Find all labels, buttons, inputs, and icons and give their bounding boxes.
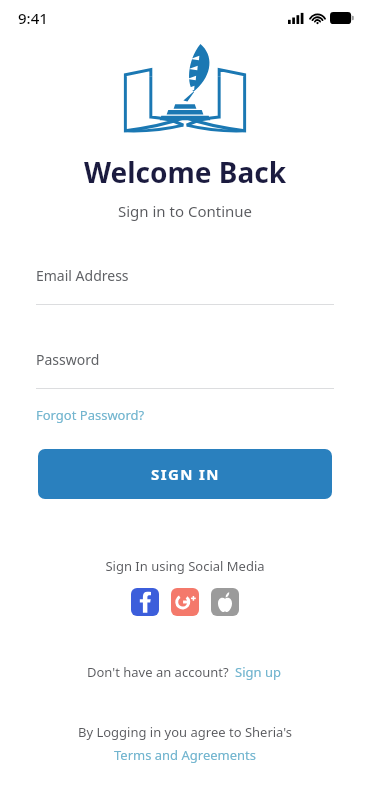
staticText: Password	[36, 350, 100, 369]
staticText: Don't have an account?	[87, 663, 233, 681]
staticText: Email Address	[36, 266, 129, 285]
staticText: 9:41	[18, 8, 48, 28]
button[interactable]: Forgot Password?	[30, 403, 151, 427]
button[interactable]: Sign in with Apple	[211, 588, 239, 616]
button[interactable]: Terms and Agreements	[110, 744, 260, 766]
staticText: By Logging in you agree to Sheria's	[0, 723, 370, 741]
staticText: SIGN IN	[151, 464, 220, 484]
staticText: Sign in to Continue	[0, 201, 370, 221]
button[interactable]: Sign in with Google	[171, 588, 199, 616]
staticText: Terms and Agreements	[114, 746, 256, 764]
button[interactable]: Sign in with Facebook	[131, 588, 159, 616]
staticText: Forgot Password?	[36, 406, 145, 424]
staticText: Sign In using Social Media	[0, 557, 370, 575]
staticText: Welcome Back	[0, 153, 370, 191]
staticText: Sign up	[235, 663, 281, 681]
button[interactable]: Sign up	[233, 661, 283, 683]
button[interactable]: SIGN IN	[38, 449, 332, 499]
